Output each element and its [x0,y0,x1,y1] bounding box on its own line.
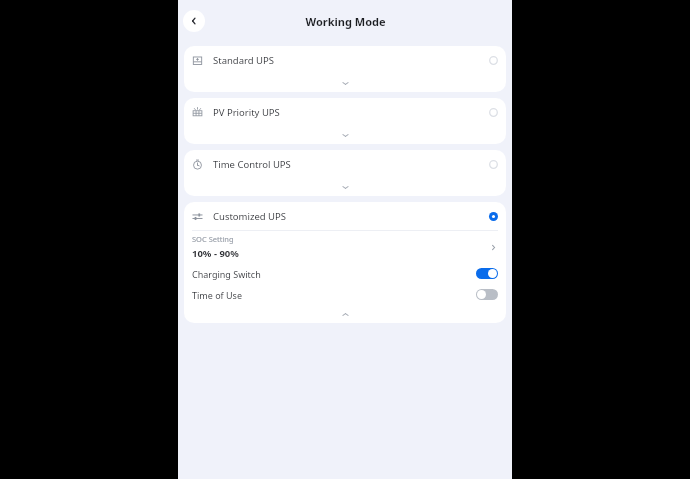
staticText: PV Priority UPS [213,106,280,119]
staticText: Customized UPS [213,210,286,223]
staticText: Charging Switch [192,268,476,280]
staticText: SOC Setting [192,234,234,244]
staticText: Time Control UPS [213,158,291,171]
staticText: Working Mode [305,14,386,29]
button[interactable]: Charging Switch [192,263,498,284]
button[interactable]: Time of Use [192,284,498,305]
button[interactable]: Standard UPS [184,46,506,92]
button[interactable]: Customized UPS [192,202,498,230]
staticText: 10% - 90% [192,247,239,260]
button[interactable]: Back [183,10,205,32]
staticText: Standard UPS [213,54,274,67]
staticText: Time of Use [192,289,476,301]
button[interactable]: SOC Setting [192,231,498,263]
button[interactable]: Time Control UPS [184,150,506,196]
button[interactable]: PV Priority UPS [184,98,506,144]
